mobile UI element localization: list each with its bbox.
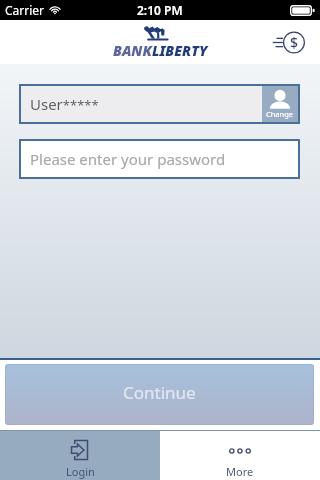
button[interactable]: Login	[0, 431, 160, 480]
button[interactable]: Continue	[5, 364, 314, 425]
button[interactable]: Please enter your password	[19, 139, 300, 179]
staticText: User*****	[30, 94, 99, 114]
button[interactable]: More	[160, 431, 320, 480]
staticText: LIBERTY	[152, 41, 208, 60]
staticText: $	[290, 33, 299, 52]
staticText: Continue	[123, 381, 196, 404]
staticText: Please enter your password	[30, 149, 226, 169]
staticText: More	[226, 464, 254, 479]
button[interactable]: User*****	[19, 84, 260, 124]
button[interactable]: Change	[262, 86, 298, 122]
button[interactable]: Fast Balance	[267, 20, 311, 64]
staticText: 2:10 PM	[137, 2, 183, 18]
staticText: Carrier	[5, 2, 45, 18]
staticText: Login	[66, 464, 95, 479]
staticText: BANK	[113, 41, 152, 60]
staticText: Change	[266, 109, 294, 119]
